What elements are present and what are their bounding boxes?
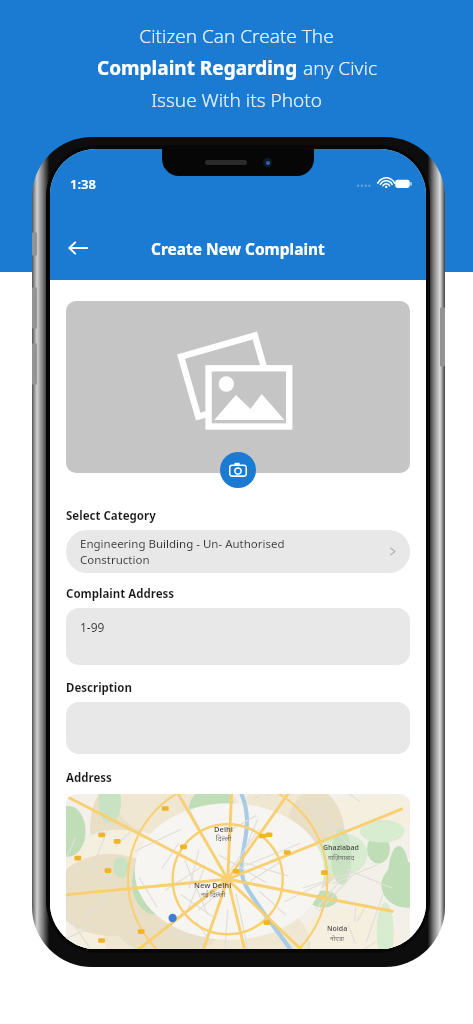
button[interactable]: Engineering Building - Un- Authorised Co… — [66, 530, 410, 573]
staticText: गाज़ियाबाद — [328, 853, 355, 862]
button[interactable]: Back — [60, 230, 96, 266]
staticText: Create New Complaint — [151, 238, 325, 259]
staticText: Complaint Address — [66, 586, 175, 602]
staticText: any Civic — [303, 55, 377, 81]
staticText: Delhi — [214, 824, 233, 834]
staticText: Engineering Building - Un- Authorised Co… — [80, 536, 285, 567]
staticText: नई दिल्ली — [201, 890, 226, 900]
staticText: Noida — [327, 924, 348, 934]
staticText: Citizen Can Create The — [139, 23, 334, 49]
staticText: Complaint Regarding — [97, 55, 303, 81]
staticText: New Delhi — [194, 880, 232, 890]
button[interactable]: 1-99 — [66, 608, 410, 665]
staticText: 1-99 — [80, 619, 105, 635]
button[interactable]: Take photo — [220, 452, 256, 488]
staticText: Address — [66, 770, 112, 786]
button[interactable]: Add photo — [66, 301, 410, 473]
staticText: Issue With its Photo — [151, 87, 322, 113]
staticText: Select Category — [66, 508, 156, 524]
staticText: 1:38 — [70, 175, 96, 193]
staticText: नोएडा — [330, 934, 345, 943]
button[interactable]: Map — [66, 794, 410, 949]
staticText: Description — [66, 680, 132, 696]
staticText: दिल्ली — [216, 834, 232, 844]
staticText: Ghaziabad — [323, 843, 359, 853]
